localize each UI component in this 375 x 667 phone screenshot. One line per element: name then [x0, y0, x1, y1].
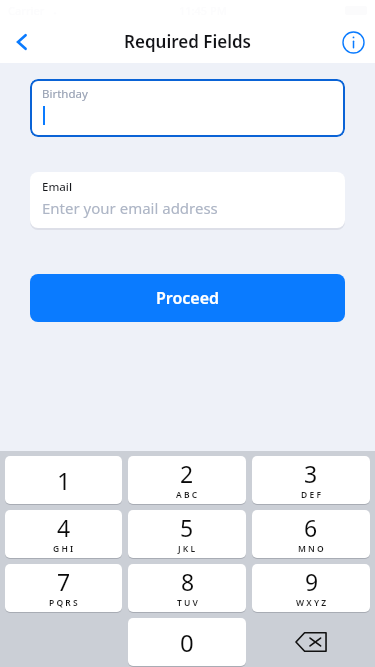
staticText: P Q R S — [49, 597, 78, 609]
staticText: 4 — [57, 512, 71, 543]
button[interactable]: Proceed — [30, 274, 345, 322]
staticText: Birthday — [42, 86, 88, 102]
staticText: G H I — [53, 543, 74, 555]
staticText: 8 — [181, 566, 195, 597]
staticText: Required Fields — [124, 30, 251, 53]
button[interactable]: 3 — [252, 456, 370, 504]
button[interactable]: 8 — [128, 564, 246, 612]
button[interactable]: 7 — [5, 564, 122, 612]
staticText: 6 — [304, 512, 318, 543]
staticText: Enter your email address — [42, 198, 218, 218]
button[interactable]: 4 — [5, 510, 122, 558]
button[interactable]: Back — [0, 20, 44, 64]
staticText: A B C — [176, 489, 198, 501]
staticText: 9 — [305, 566, 319, 597]
button[interactable]: 6 — [252, 510, 370, 558]
staticText: 3 — [304, 458, 318, 489]
button[interactable]: 0 — [128, 618, 246, 666]
staticText: 1 — [57, 464, 71, 497]
staticText: T U V — [177, 597, 198, 609]
staticText: 5 — [180, 512, 194, 543]
staticText: 0 — [180, 626, 194, 659]
button[interactable]: 9 — [252, 564, 370, 612]
button[interactable]: 1 — [5, 456, 122, 504]
staticText: W X Y Z — [296, 597, 327, 609]
staticText: 2 — [180, 458, 194, 489]
button[interactable]: Delete — [252, 618, 370, 666]
staticText: 7 — [57, 566, 71, 597]
staticText: J K L — [178, 543, 196, 555]
staticText: Email — [42, 179, 73, 195]
staticText: Proceed — [156, 287, 220, 309]
button[interactable]: 2 — [128, 456, 246, 504]
staticText: D E F — [301, 489, 321, 501]
button[interactable]: Email — [30, 172, 345, 228]
button[interactable]: 5 — [128, 510, 246, 558]
button[interactable]: Information — [331, 20, 375, 64]
button[interactable]: Birthday — [30, 79, 345, 137]
staticText: M N O — [298, 543, 324, 555]
